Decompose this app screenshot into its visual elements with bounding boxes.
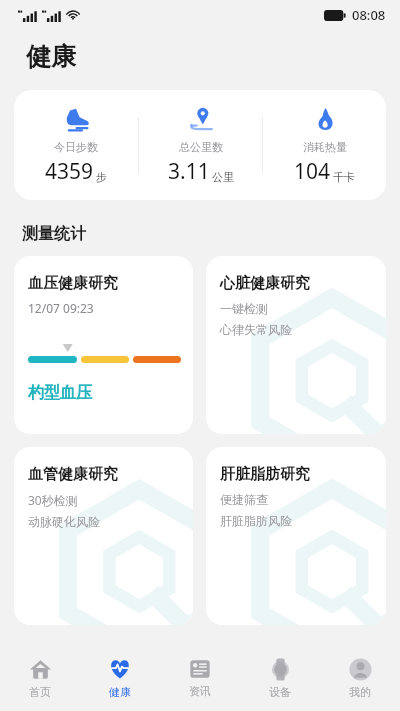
button[interactable]: 血压健康研究: [14, 256, 193, 434]
staticText: 30秒检测: [28, 492, 78, 508]
button[interactable]: 我的: [320, 652, 400, 705]
button[interactable]: 消耗热量: [263, 104, 386, 186]
staticText: 千卡: [333, 170, 355, 184]
staticText: 资讯: [189, 684, 211, 698]
button[interactable]: 今日步数: [14, 90, 386, 200]
button[interactable]: 资讯: [160, 652, 240, 704]
button[interactable]: 总公里数: [139, 104, 262, 186]
staticText: 首页: [29, 685, 51, 699]
staticText: 公里: [212, 170, 234, 184]
staticText: 08:08: [352, 6, 386, 24]
staticText: 健康: [26, 41, 76, 72]
staticText: 血管健康研究: [28, 465, 118, 484]
button[interactable]: 健康: [80, 651, 160, 705]
staticText: 12/07 09:23: [28, 300, 94, 316]
button[interactable]: 首页: [0, 652, 80, 705]
staticText: 一键检测: [220, 301, 268, 316]
staticText: 总公里数: [179, 140, 223, 154]
staticText: 动脉硬化风险: [28, 514, 100, 529]
staticText: 健康: [109, 685, 131, 699]
staticText: 肝脏脂肪研究: [220, 465, 310, 484]
button[interactable]: 心脏健康研究: [206, 256, 386, 434]
staticText: 步: [96, 170, 107, 184]
staticText: 消耗热量: [303, 140, 347, 154]
button[interactable]: 今日步数: [14, 104, 138, 186]
staticText: 设备: [269, 685, 291, 699]
staticText: 4359: [45, 157, 94, 186]
staticText: 便捷筛查: [220, 492, 268, 507]
staticText: 104: [294, 157, 331, 186]
staticText: 心脏健康研究: [220, 274, 310, 293]
staticText: 3.11: [168, 157, 210, 186]
staticText: 我的: [349, 685, 371, 699]
staticText: 测量统计: [22, 224, 86, 244]
button[interactable]: 肝脏脂肪研究: [206, 447, 386, 625]
staticText: 肝脏脂肪风险: [220, 513, 292, 528]
staticText: 今日步数: [54, 140, 98, 154]
button[interactable]: 设备: [240, 652, 320, 705]
button[interactable]: 血管健康研究: [14, 447, 193, 625]
staticText: 心律失常风险: [220, 322, 292, 337]
staticText: 血压健康研究: [28, 274, 118, 293]
staticText: 杓型血压: [28, 383, 92, 403]
